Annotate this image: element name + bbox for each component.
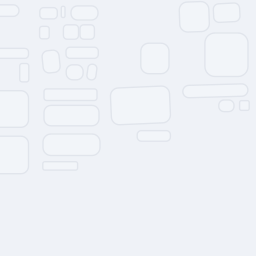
button[interactable]: Badge <box>240 101 249 110</box>
button[interactable]: Row <box>44 105 99 126</box>
button[interactable]: Chip <box>66 65 83 80</box>
button[interactable]: Icon tile <box>63 25 78 39</box>
button[interactable]: Chip <box>87 64 96 80</box>
button[interactable]: Caption <box>43 162 78 170</box>
button[interactable]: Pill button <box>71 6 98 20</box>
button[interactable]: Row <box>43 134 100 155</box>
button[interactable]: Card <box>213 3 240 22</box>
button[interactable]: Field <box>0 48 28 58</box>
button[interactable]: Progress bar <box>183 85 248 97</box>
button[interactable]: Row <box>66 47 98 58</box>
button[interactable]: Tag <box>40 8 57 19</box>
button[interactable]: Feature card <box>205 33 248 76</box>
button[interactable]: Card <box>141 43 169 74</box>
button[interactable]: Badge <box>40 26 49 39</box>
button[interactable]: Bar <box>20 63 29 82</box>
button[interactable]: Pill <box>137 131 170 141</box>
button[interactable]: Card <box>179 2 209 32</box>
button[interactable]: Divider <box>61 6 65 17</box>
button[interactable]: Card <box>111 87 170 124</box>
button[interactable]: Thumbnail <box>43 50 60 73</box>
button[interactable]: Icon tile <box>80 25 94 39</box>
button[interactable]: Card <box>0 136 28 174</box>
button[interactable]: Search field <box>0 5 19 16</box>
button[interactable]: Title bar <box>44 89 97 100</box>
button[interactable]: Chip <box>219 100 234 112</box>
